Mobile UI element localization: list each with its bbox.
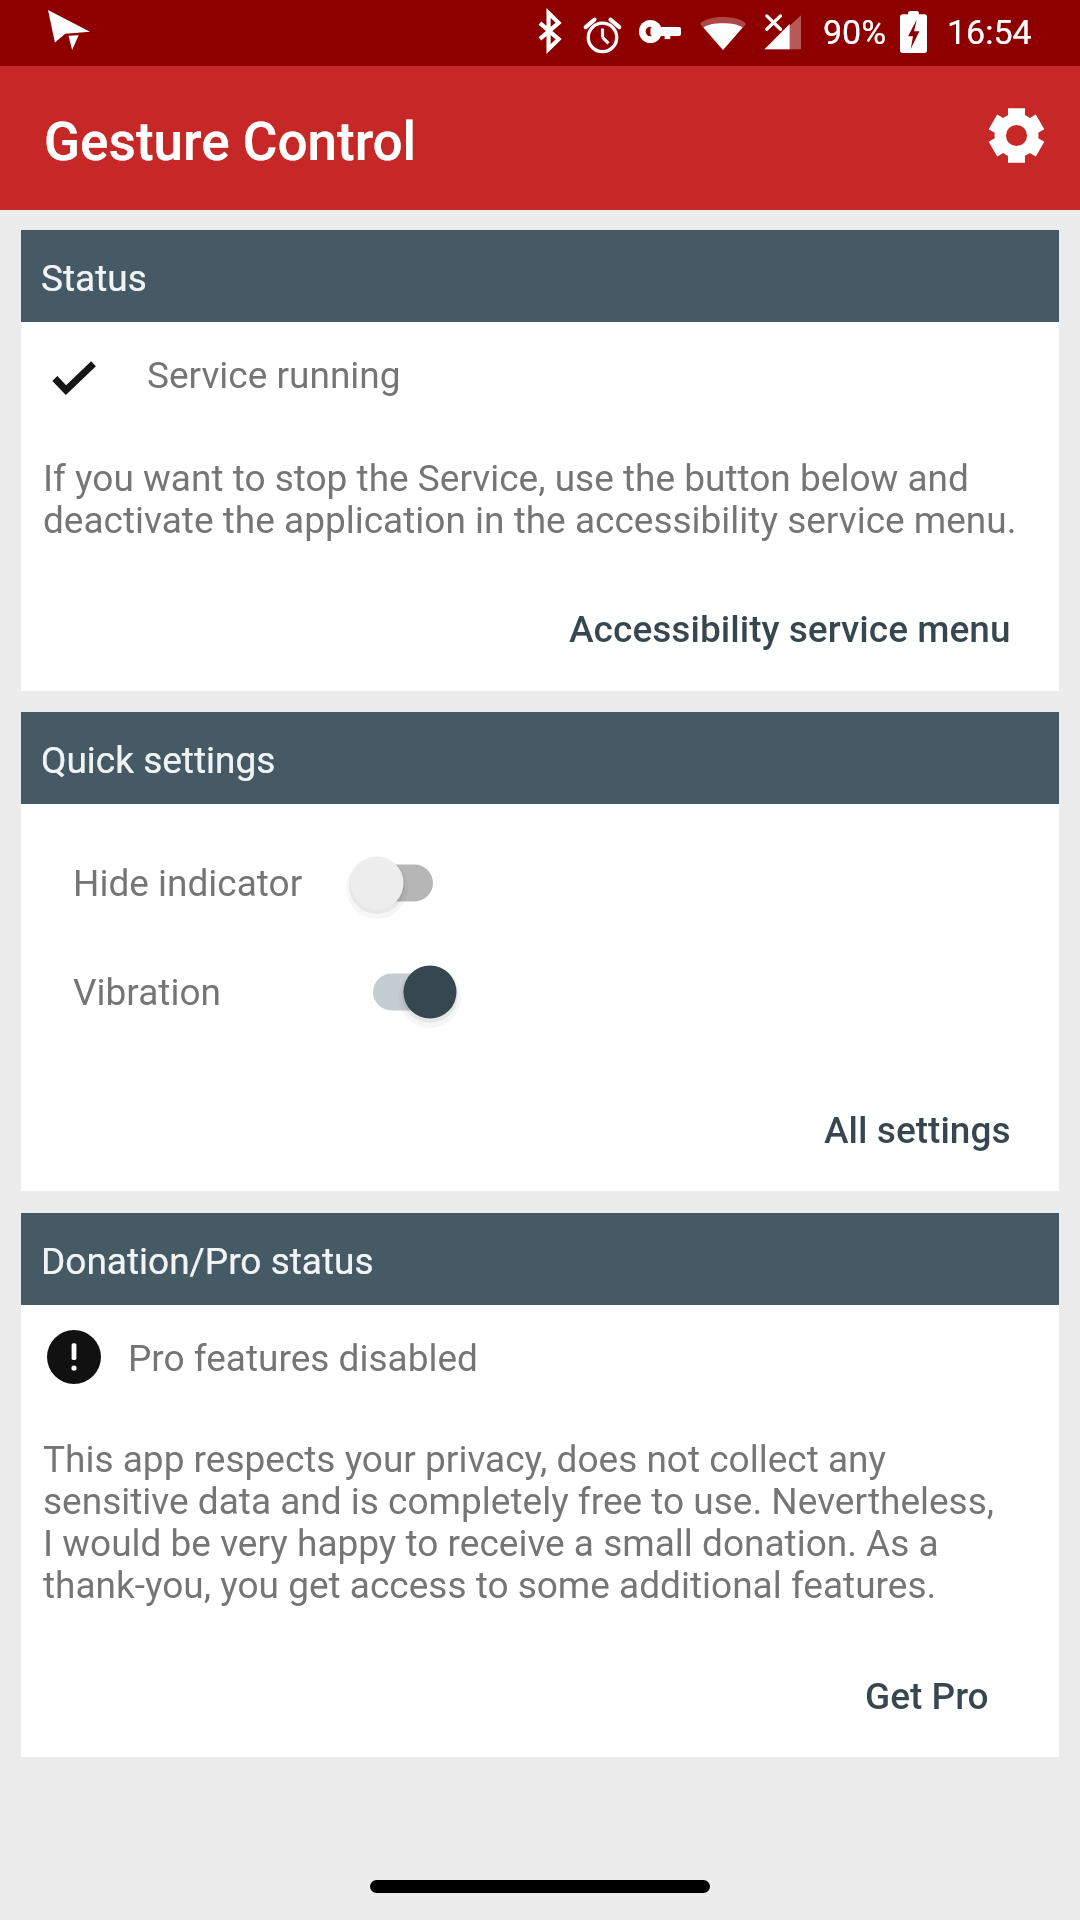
staticText: Service running: [147, 354, 401, 397]
staticText: Get Pro: [865, 1675, 989, 1718]
staticText: Pro features disabled: [128, 1337, 478, 1380]
button[interactable]: Settings: [968, 87, 1064, 183]
staticText: All settings: [824, 1109, 1011, 1152]
button[interactable]: Vibration: [21, 938, 1059, 1046]
button[interactable]: Get Pro: [795, 1648, 1059, 1744]
staticText: This app respects your privacy, does not…: [43, 1438, 1013, 1607]
staticText: If you want to stop the Service, use the…: [43, 457, 1025, 542]
staticText: Donation/Pro status: [41, 1240, 374, 1283]
button[interactable]: Hide indicator: [21, 829, 1059, 937]
staticText: Vibration: [73, 971, 221, 1014]
staticText: Gesture Control: [44, 111, 417, 173]
staticText: Accessibility service menu: [569, 608, 1011, 651]
button[interactable]: All settings: [776, 1082, 1059, 1178]
staticText: Quick settings: [41, 739, 276, 782]
staticText: 16:54: [947, 12, 1032, 52]
staticText: 90%: [823, 12, 887, 52]
staticText: Hide indicator: [73, 862, 303, 905]
staticText: Status: [41, 257, 147, 300]
button[interactable]: Accessibility service menu: [521, 581, 1059, 677]
